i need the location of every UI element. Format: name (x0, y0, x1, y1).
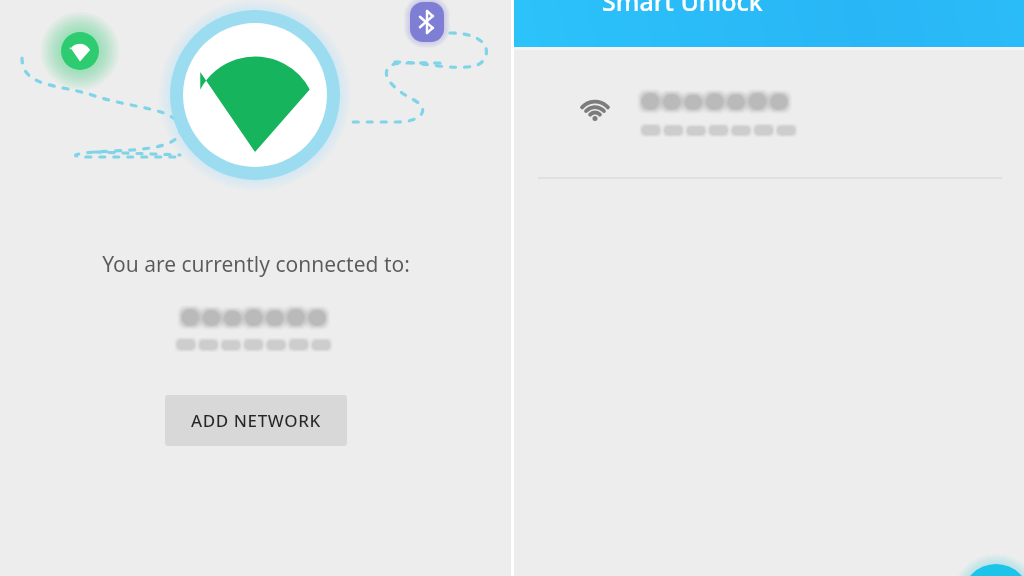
button[interactable]: ADD NETWORK (165, 395, 347, 446)
staticText: You are currently connected to: (102, 250, 410, 279)
other: Wi-Fi network (574, 93, 616, 135)
staticText: ADD NETWORK (191, 409, 321, 432)
button[interactable]: Wi-Fi network (514, 50, 1024, 177)
staticText: Smart Unlock (602, 0, 763, 18)
other: Add (514, 0, 1024, 576)
